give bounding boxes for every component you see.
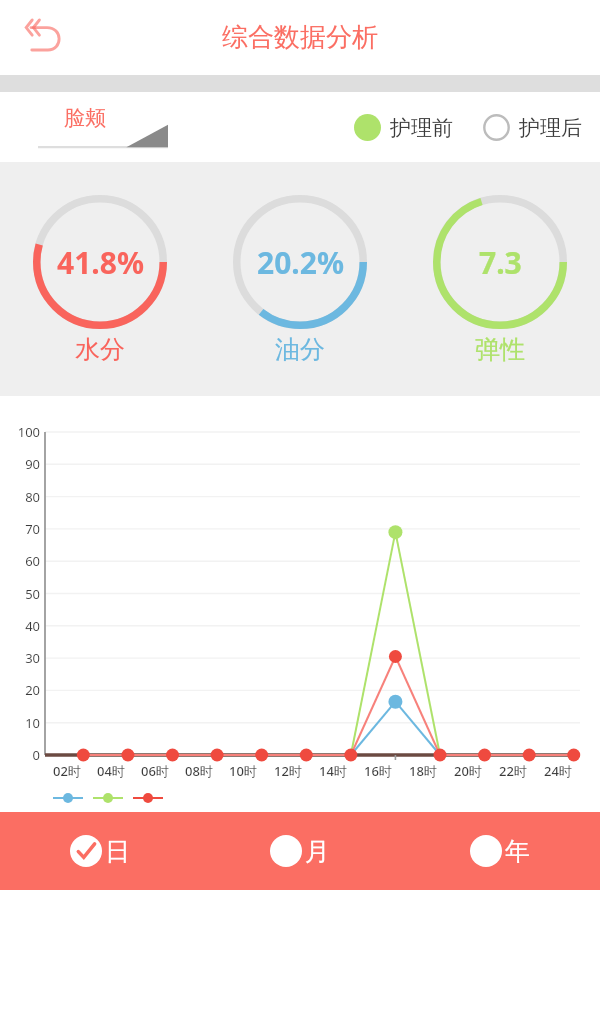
button[interactable]: 41.8% <box>0 194 200 365</box>
staticText: 护理后 <box>519 115 582 141</box>
staticText: 04时 <box>97 762 125 780</box>
staticText: 18时 <box>409 762 437 780</box>
staticText: 年 <box>505 836 530 867</box>
staticText: 60 <box>0 552 40 570</box>
staticText: 14时 <box>319 762 347 780</box>
button[interactable]: 护理后 <box>479 110 586 145</box>
staticText: 70 <box>0 520 40 538</box>
staticText: 22时 <box>499 762 527 780</box>
staticText: 12时 <box>274 762 302 780</box>
staticText: 16时 <box>364 762 392 780</box>
staticText: 80 <box>0 488 40 506</box>
staticText: 40 <box>0 617 40 635</box>
staticText: 20.2% <box>257 242 344 283</box>
staticText: 油分 <box>275 334 325 365</box>
staticText: 10 <box>0 714 40 732</box>
button[interactable]: 年 <box>400 812 600 890</box>
staticText: 30 <box>0 649 40 667</box>
staticText: 0 <box>0 746 40 764</box>
staticText: 20时 <box>454 762 482 780</box>
button[interactable]: 7.3 <box>400 194 600 365</box>
staticText: 100 <box>0 423 40 441</box>
staticText: 41.8% <box>57 242 144 283</box>
staticText: 08时 <box>185 762 213 780</box>
staticText: 06时 <box>141 762 169 780</box>
staticText: 弹性 <box>475 334 525 365</box>
button[interactable]: 护理前 <box>350 110 457 145</box>
staticText: 综合数据分析 <box>222 21 378 54</box>
button[interactable]: 月 <box>200 812 400 890</box>
staticText: 脸颊 <box>64 105 106 131</box>
staticText: 24时 <box>544 762 572 780</box>
staticText: 护理前 <box>390 115 453 141</box>
staticText: 50 <box>0 585 40 603</box>
button[interactable]: 日 <box>0 812 200 890</box>
staticText: 10时 <box>229 762 257 780</box>
staticText: 月 <box>305 836 330 867</box>
staticText: 7.3 <box>479 242 522 283</box>
staticText: 02时 <box>53 762 81 780</box>
button[interactable]: Back <box>14 9 72 67</box>
staticText: 90 <box>0 455 40 473</box>
staticText: 水分 <box>75 334 125 365</box>
staticText: 日 <box>105 836 130 867</box>
button[interactable]: 20.2% <box>200 194 400 365</box>
staticText: 20 <box>0 681 40 699</box>
button[interactable]: 脸颊 <box>38 99 168 155</box>
